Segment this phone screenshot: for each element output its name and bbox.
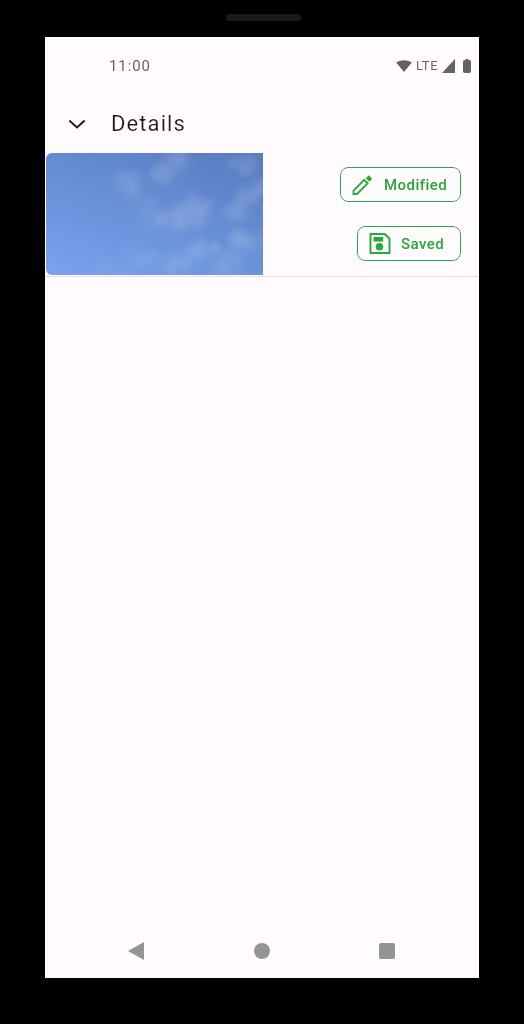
staticText: Details bbox=[111, 111, 187, 137]
button[interactable]: Details bbox=[45, 93, 479, 154]
button[interactable]: Saved bbox=[357, 226, 461, 261]
staticText: 11:00 bbox=[109, 57, 151, 75]
button[interactable]: Home bbox=[238, 927, 286, 975]
button[interactable]: Modified bbox=[340, 167, 461, 202]
button[interactable]: Recents bbox=[363, 927, 411, 975]
staticText: Saved bbox=[401, 235, 445, 253]
button[interactable]: Photo bbox=[46, 153, 263, 275]
button[interactable]: Back bbox=[112, 927, 160, 975]
staticText: LTE bbox=[416, 58, 439, 73]
staticText: Modified bbox=[384, 176, 448, 194]
